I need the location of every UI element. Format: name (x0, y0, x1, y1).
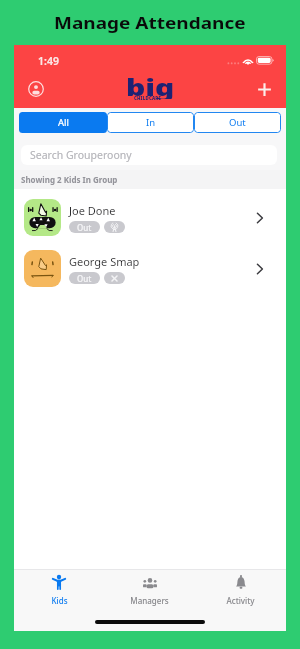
button[interactable]: Joe Done (14, 199, 286, 236)
button[interactable]: Search Grouperoony (21, 145, 277, 165)
button[interactable]: George Smap (14, 250, 286, 287)
staticText: Kids (51, 595, 68, 606)
staticText: Activity (226, 595, 255, 606)
staticText: All (58, 116, 69, 129)
staticText: Search Grouperoony (30, 148, 132, 162)
button[interactable]: All (19, 112, 107, 133)
button[interactable]: Out (194, 112, 281, 133)
staticText: Out (229, 116, 246, 129)
staticText: big (126, 71, 186, 99)
staticText: Showing 2 Kids In Group (21, 174, 118, 185)
staticText: CHILDCARE (134, 95, 162, 101)
button[interactable]: Managers (104, 570, 195, 611)
staticText: Manage Attendance (54, 12, 246, 34)
button[interactable]: In (107, 112, 194, 133)
button[interactable]: Account (20, 73, 52, 105)
button[interactable]: Activity (195, 570, 286, 611)
staticText: 1:49 (38, 54, 59, 68)
staticText: Out (77, 273, 92, 284)
staticText: Managers (130, 595, 169, 606)
staticText: Joe Done (69, 203, 116, 218)
button[interactable]: Add (248, 73, 280, 105)
staticText: George Smap (69, 254, 140, 269)
staticText: In (146, 116, 156, 129)
button[interactable]: Kids (14, 570, 104, 611)
staticText: Out (77, 222, 92, 233)
